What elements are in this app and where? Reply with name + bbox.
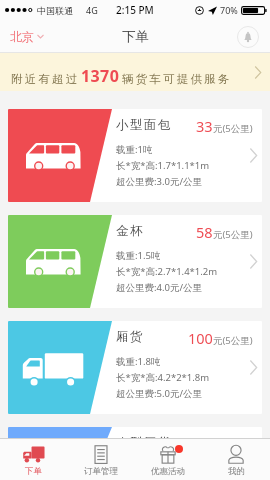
button[interactable]: 厢货	[8, 321, 262, 414]
staticText: 订单管理	[84, 466, 118, 477]
button[interactable]: 我的	[202, 439, 270, 480]
button[interactable]: 北京	[10, 20, 44, 53]
staticText: 长*宽*高:4.2*2*1.8m	[116, 371, 210, 384]
staticText: 厢货	[116, 329, 144, 345]
staticText: 中国联通	[37, 5, 73, 16]
staticText: 小型面包	[116, 117, 172, 133]
staticText: 附近有超过	[11, 72, 80, 86]
staticText: 元(5公里)	[213, 122, 253, 135]
staticText: 33	[196, 116, 213, 136]
staticText: 载重:2.5吨	[116, 461, 161, 474]
staticText: 100	[188, 328, 213, 348]
staticText: 载重:1.5吨	[116, 249, 161, 262]
staticText: 4G	[86, 4, 98, 16]
button[interactable]: 下单	[0, 439, 67, 480]
staticText: 下单	[122, 28, 149, 45]
staticText: 长*宽*高:2.7*1.4*1.2m	[116, 265, 218, 278]
staticText: 58	[196, 222, 213, 242]
staticText: 优惠活动	[151, 466, 185, 477]
button[interactable]: 小型厢货	[8, 427, 262, 480]
staticText: 元(5公里)	[213, 228, 253, 241]
button[interactable]: 小型面包	[8, 109, 262, 202]
staticText: 1370	[81, 65, 120, 87]
button[interactable]: 订单管理	[67, 439, 134, 480]
staticText: 长*宽*高:1.7*1.1*1m	[116, 159, 210, 172]
staticText: 我的	[228, 466, 245, 477]
staticText: 下单	[25, 466, 42, 477]
button[interactable]: 金杯	[8, 215, 262, 308]
staticText: 元(5公里)	[213, 440, 253, 453]
staticText: 120	[188, 434, 213, 454]
staticText: 辆货车可提供服务	[122, 72, 232, 86]
staticText: 载重:1吨	[116, 143, 153, 156]
staticText: 超公里费:4.0元/公里	[116, 281, 202, 294]
button[interactable]: 附近有超过	[0, 53, 270, 91]
staticText: 小型厢货	[116, 435, 172, 451]
staticText: 70%	[220, 4, 238, 16]
button[interactable]: 优惠活动	[134, 439, 202, 480]
staticText: 超公里费:5.0元/公里	[116, 387, 202, 400]
staticText: 元(5公里)	[213, 334, 253, 347]
staticText: 金杯	[116, 223, 144, 239]
staticText: 载重:1.8吨	[116, 355, 161, 368]
staticText: 2:15 PM	[116, 3, 154, 17]
staticText: 北京	[10, 29, 34, 44]
button[interactable]: Notifications	[237, 26, 259, 48]
staticText: 超公里费:3.0元/公里	[116, 175, 202, 188]
